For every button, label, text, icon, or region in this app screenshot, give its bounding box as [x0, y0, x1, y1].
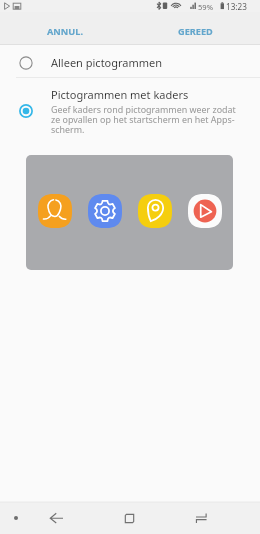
button[interactable]: Alleen pictogrammen [0, 47, 260, 79]
button[interactable]: Home [93, 502, 165, 534]
button[interactable]: Hide navigation bar [4, 502, 28, 534]
staticText: ANNUL. [47, 25, 83, 38]
button[interactable]: Settings [88, 194, 122, 228]
staticText: Pictogrammen met kaders [51, 87, 189, 102]
button[interactable]: Contacts [38, 194, 72, 228]
staticText: GEREED [178, 25, 213, 38]
staticText: 13:23 [226, 1, 247, 12]
button[interactable]: Back [20, 502, 92, 534]
button[interactable]: GEREED [130, 12, 260, 44]
button[interactable]: Pictogrammen met kaders [0, 79, 260, 144]
staticText: Alleen pictogrammen [51, 55, 163, 70]
button[interactable]: Play Store [188, 194, 222, 228]
button[interactable]: Recent apps [165, 502, 237, 534]
staticText: 59% [198, 2, 213, 12]
button[interactable]: Maps [138, 194, 172, 228]
staticText: Geef kaders rond pictogrammen weer zodat… [51, 103, 244, 136]
button[interactable]: ANNUL. [0, 12, 130, 44]
